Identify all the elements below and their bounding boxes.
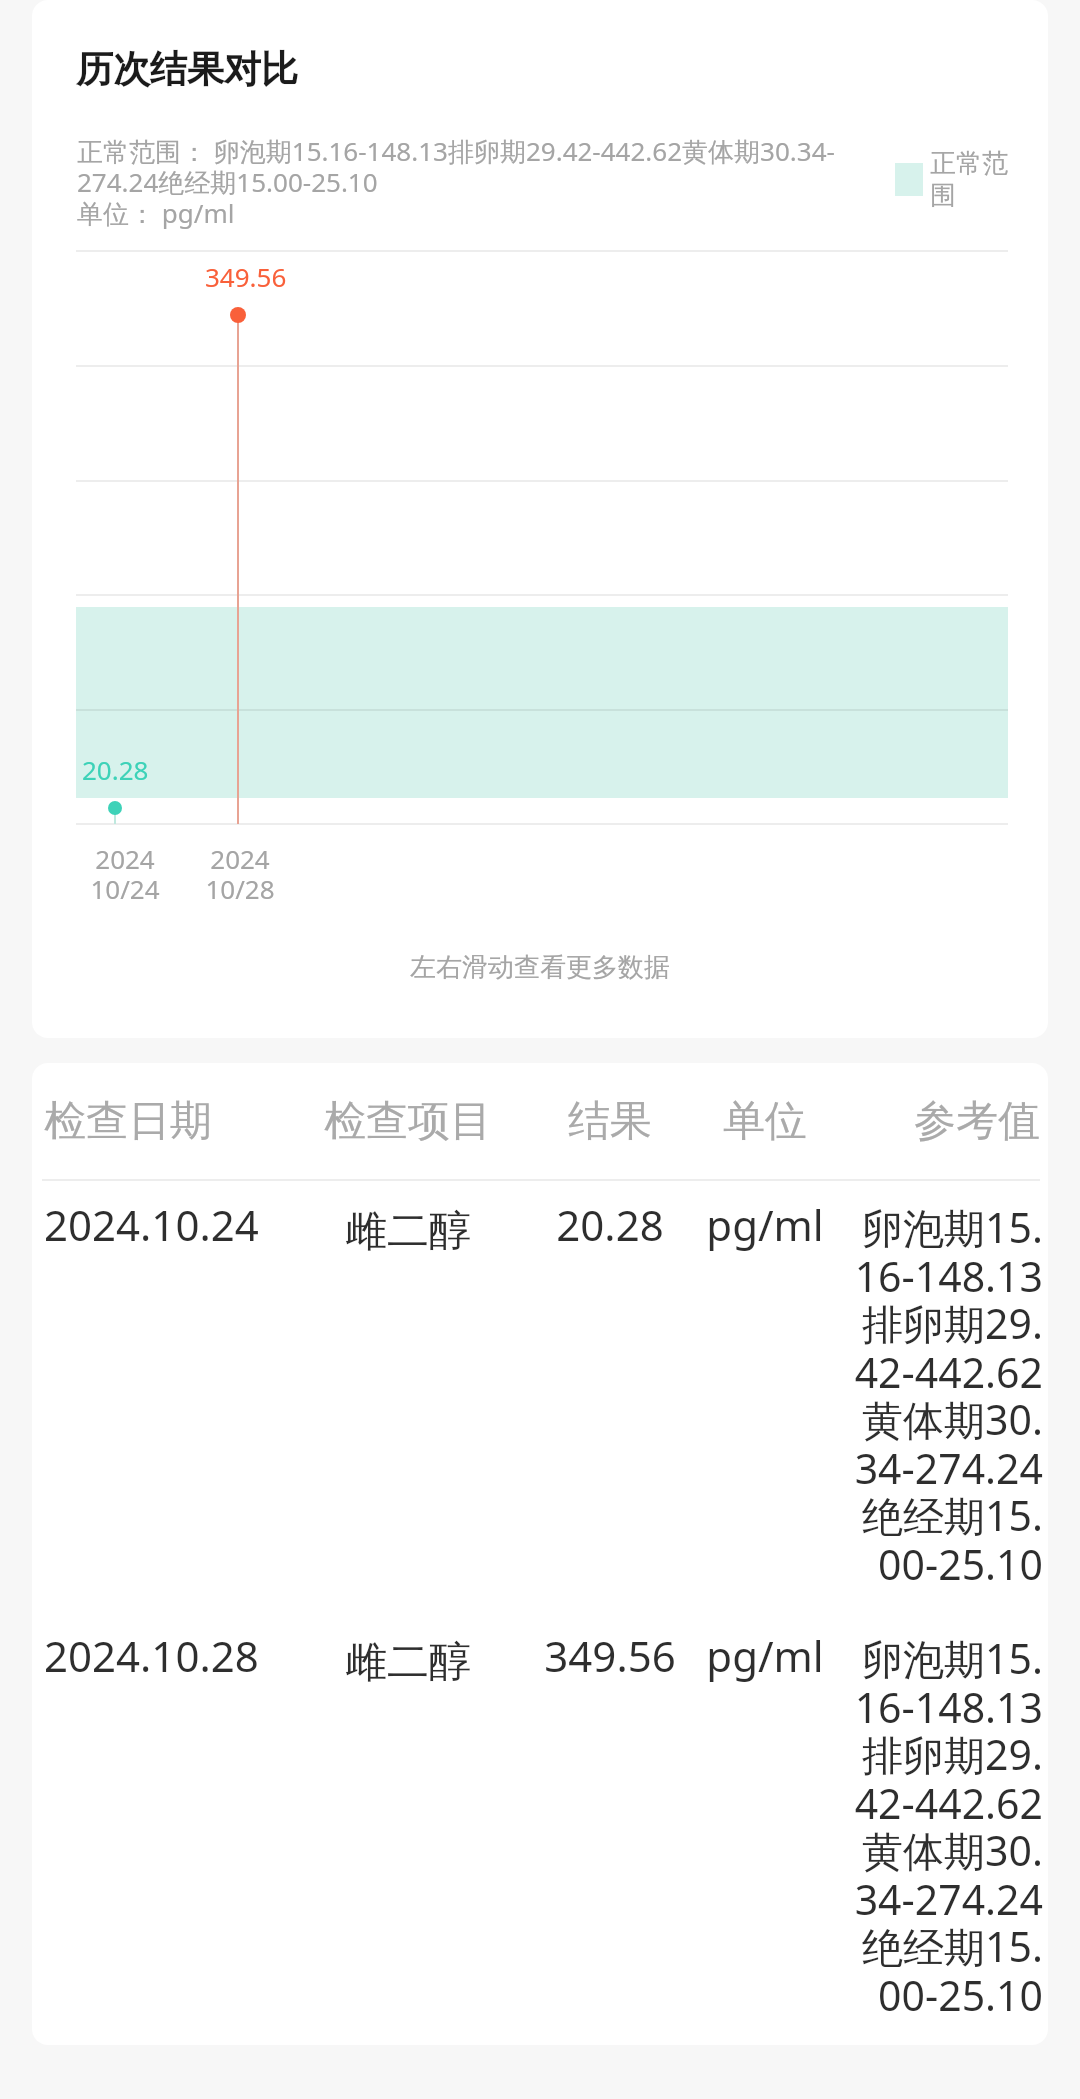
staticText: 正常范围： 卵泡期15.16-148.13排卵期29.42-442.62黄体期3… [77, 133, 877, 230]
staticText: 检查日期 [44, 1095, 212, 1148]
staticText: 2024.10.28 [44, 1627, 259, 1684]
staticText: 2024.10.24 [44, 1196, 259, 1253]
staticText: pg/ml [645, 1196, 885, 1253]
staticText: 雌二醇 [288, 1205, 528, 1258]
staticText: pg/ml [645, 1627, 885, 1684]
staticText: 结果 [490, 1095, 730, 1148]
staticText: 雌二醇 [288, 1636, 528, 1689]
staticText: 2024 10/28 [180, 841, 300, 907]
staticText: 349.56 [490, 1627, 730, 1684]
button[interactable]: 左右滑动查看更多数据 [380, 938, 700, 996]
button[interactable] [32, 0, 1048, 1038]
staticText: 20.28 [490, 1196, 730, 1253]
staticText: 349.56 [205, 259, 287, 294]
staticText: 正常范围 [930, 147, 1012, 212]
staticText: 单位 [645, 1095, 885, 1148]
staticText: 卵泡期15. 16-148.13 排卵期29. 42-442.62 黄体期30.… [843, 1630, 1043, 2023]
staticText: 20.28 [82, 752, 149, 787]
staticText: 2024 10/24 [65, 841, 185, 907]
staticText: 检查项目 [288, 1095, 528, 1148]
staticText: 左右滑动查看更多数据 [410, 951, 670, 984]
staticText: 卵泡期15. 16-148.13 排卵期29. 42-442.62 黄体期30.… [843, 1199, 1043, 1592]
staticText: 参考值 [800, 1095, 1040, 1148]
staticText: 历次结果对比 [76, 46, 298, 93]
button[interactable] [32, 1063, 1048, 2045]
